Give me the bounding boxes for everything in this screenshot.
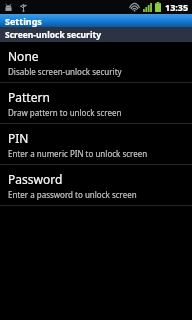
button[interactable]: PIN xyxy=(0,124,192,164)
staticText: Pattern xyxy=(8,89,50,105)
other: Android notification xyxy=(4,3,13,12)
staticText: Draw pattern to unlock screen xyxy=(8,107,122,118)
staticText: Disable screen-unlock security xyxy=(8,66,122,77)
other: Cellular signal xyxy=(143,3,152,12)
button[interactable]: Pattern xyxy=(0,83,192,123)
staticText: Screen-unlock security xyxy=(5,29,101,41)
staticText: 13:35 xyxy=(165,1,189,13)
staticText: Enter a numeric PIN to unlock screen xyxy=(8,148,148,159)
staticText: None xyxy=(8,48,39,64)
staticText: Enter a password to unlock screen xyxy=(8,189,137,200)
other: Wi-Fi signal xyxy=(129,3,140,12)
staticText: PIN xyxy=(8,130,29,146)
staticText: Settings xyxy=(5,15,42,27)
staticText: Password xyxy=(8,171,63,187)
other: Battery xyxy=(155,2,161,12)
button[interactable]: Password xyxy=(0,165,192,205)
button[interactable]: Settings xyxy=(0,14,192,27)
button[interactable]: None xyxy=(0,42,192,82)
other: USB connected xyxy=(19,3,28,12)
